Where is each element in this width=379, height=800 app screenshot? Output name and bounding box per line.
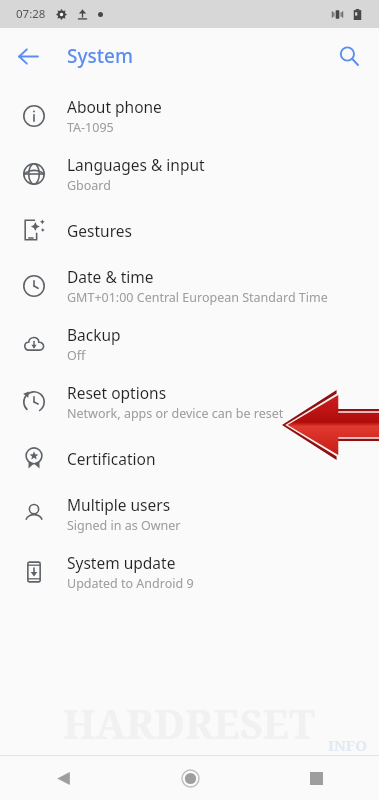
staticText: Gestures: [67, 220, 132, 241]
staticText: TA-1095: [67, 119, 114, 136]
button[interactable]: Recents: [253, 756, 379, 800]
staticText: INFO: [328, 735, 367, 755]
staticText: HARDRESET: [63, 696, 316, 750]
staticText: Network, apps or device can be reset: [67, 405, 284, 422]
button[interactable]: Search: [329, 36, 369, 76]
staticText: Languages & input: [67, 154, 205, 175]
staticText: System update: [67, 552, 176, 573]
staticText: Gboard: [67, 177, 111, 194]
button[interactable]: Reset options: [0, 373, 379, 431]
button[interactable]: Certification: [0, 431, 379, 485]
button[interactable]: Multiple users: [0, 485, 379, 543]
button[interactable]: Back: [8, 36, 48, 76]
staticText: Date & time: [67, 266, 154, 287]
staticText: System: [67, 43, 133, 69]
staticText: Reset options: [67, 382, 167, 403]
button[interactable]: About phone: [0, 87, 379, 145]
button[interactable]: Languages & input: [0, 145, 379, 203]
staticText: Multiple users: [67, 494, 171, 515]
staticText: Certification: [67, 448, 156, 469]
button[interactable]: System update: [0, 543, 379, 601]
button[interactable]: Back: [0, 756, 127, 800]
button[interactable]: Date & time: [0, 257, 379, 315]
staticText: 07:28: [16, 6, 46, 22]
button[interactable]: Backup: [0, 315, 379, 373]
staticText: Off: [67, 347, 86, 364]
staticText: Signed in as Owner: [67, 517, 181, 534]
staticText: Backup: [67, 324, 121, 345]
staticText: Updated to Android 9: [67, 575, 194, 592]
staticText: GMT+01:00 Central European Standard Time: [67, 289, 328, 306]
button[interactable]: Gestures: [0, 203, 379, 257]
staticText: About phone: [67, 96, 162, 117]
button[interactable]: Home: [127, 756, 253, 800]
